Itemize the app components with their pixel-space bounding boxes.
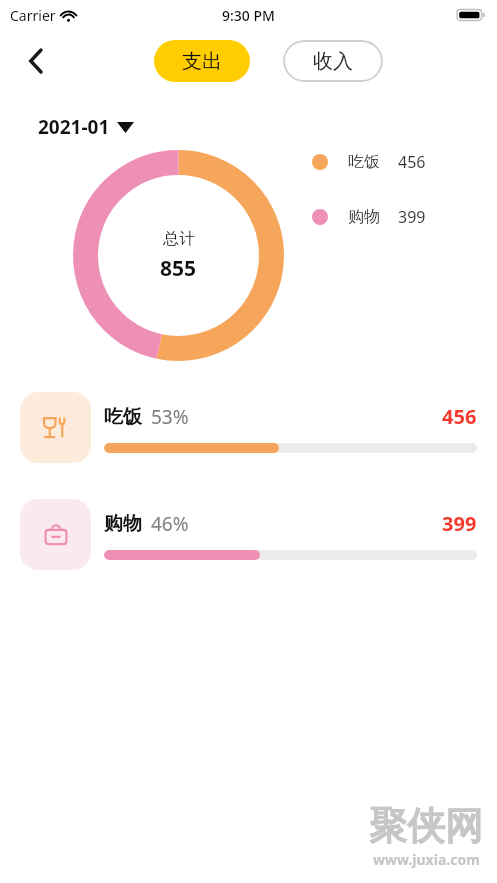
- staticText: 收入: [313, 49, 353, 74]
- staticText: 399: [442, 510, 477, 537]
- staticText: 支出: [182, 49, 222, 74]
- staticText: 2021-01: [38, 114, 110, 140]
- staticText: 855: [160, 254, 197, 283]
- button[interactable]: 支出: [154, 40, 250, 82]
- staticText: 总计: [163, 229, 195, 249]
- staticText: 9:30 PM: [222, 6, 275, 25]
- button[interactable]: Back: [14, 39, 58, 83]
- staticText: 购物: [348, 207, 380, 227]
- staticText: www.juxia.com: [373, 850, 480, 869]
- button[interactable]: 吃饭: [20, 392, 477, 463]
- staticText: 吃饭: [104, 405, 142, 429]
- button[interactable]: 购物: [20, 499, 477, 570]
- staticText: 吃饭: [348, 152, 380, 172]
- staticText: Carrier: [10, 6, 56, 25]
- staticText: 46%: [151, 511, 189, 537]
- staticText: 53%: [151, 404, 189, 430]
- staticText: 399: [398, 206, 426, 228]
- staticText: 456: [398, 151, 426, 173]
- staticText: 购物: [104, 512, 142, 536]
- button[interactable]: 2021-01: [38, 114, 134, 140]
- staticText: 聚侠网: [369, 802, 483, 850]
- staticText: 456: [442, 403, 477, 430]
- button[interactable]: 吃饭: [312, 151, 426, 173]
- button[interactable]: 购物: [312, 206, 426, 228]
- button[interactable]: 收入: [283, 40, 383, 82]
